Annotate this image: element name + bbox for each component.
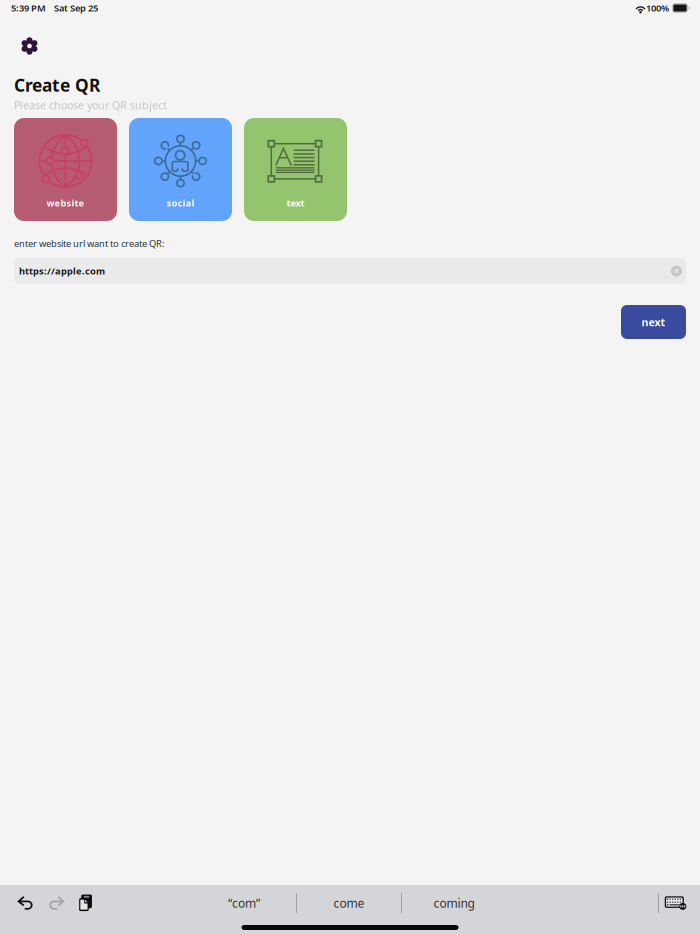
button[interactable]: “com” <box>192 885 296 921</box>
button[interactable]: coming <box>402 885 506 921</box>
staticText: website <box>46 197 84 209</box>
staticText: text <box>286 197 304 209</box>
staticText: Sat Sep 25 <box>54 2 98 14</box>
button[interactable]: Redo <box>41 886 73 920</box>
button[interactable]: Clear text <box>671 264 682 278</box>
button[interactable]: Undo <box>9 886 41 920</box>
button[interactable]: next <box>621 305 686 339</box>
button[interactable]: social <box>129 118 232 221</box>
button[interactable]: Paste <box>68 886 100 920</box>
button[interactable]: Keyboard options <box>661 886 690 920</box>
staticText: social <box>166 197 194 209</box>
button[interactable]: Settings <box>14 37 45 55</box>
staticText: “com” <box>228 895 260 911</box>
button[interactable]: come <box>297 885 401 921</box>
button[interactable]: text <box>244 118 347 221</box>
staticText: come <box>333 895 364 911</box>
staticText: enter website url want to create QR: <box>14 237 165 250</box>
staticText: https://apple.com <box>19 265 105 277</box>
staticText: Create QR <box>14 73 100 96</box>
button[interactable]: website <box>14 118 117 221</box>
staticText: coming <box>433 895 474 911</box>
staticText: 100% <box>646 2 669 14</box>
staticText: 5:39 PM <box>11 2 46 14</box>
staticText: Please choose your QR subject <box>14 98 167 112</box>
staticText: next <box>641 315 665 329</box>
